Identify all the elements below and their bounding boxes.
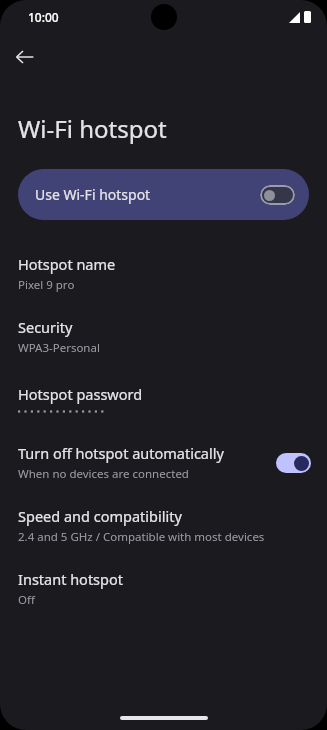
button[interactable]: Back bbox=[8, 40, 42, 74]
button[interactable]: Toggle on bbox=[276, 453, 311, 473]
staticText: Speed and compatibility bbox=[18, 506, 182, 526]
button[interactable]: Turn off hotspot automatically bbox=[0, 431, 327, 494]
button[interactable]: Toggle off bbox=[260, 185, 295, 205]
staticText: Wi-Fi hotspot bbox=[18, 112, 167, 145]
staticText: 2.4 and 5 GHz / Compatible with most dev… bbox=[18, 529, 265, 545]
staticText: WPA3-Personal bbox=[18, 340, 100, 356]
staticText: Off bbox=[18, 592, 35, 608]
button[interactable]: Security bbox=[0, 305, 327, 368]
button[interactable]: Use Wi-Fi hotspot bbox=[18, 169, 309, 220]
staticText: Hotspot password bbox=[18, 384, 143, 404]
button[interactable]: Speed and compatibility bbox=[0, 494, 327, 557]
staticText: Use Wi-Fi hotspot bbox=[35, 185, 260, 204]
button[interactable]: Instant hotspot bbox=[0, 557, 327, 620]
staticText: Turn off hotspot automatically bbox=[18, 443, 224, 463]
staticText: Pixel 9 pro bbox=[18, 277, 75, 293]
staticText: Security bbox=[18, 317, 73, 337]
button[interactable]: Hotspot name bbox=[0, 242, 327, 305]
staticText: When no devices are connected bbox=[18, 466, 189, 482]
staticText: Instant hotspot bbox=[18, 569, 123, 589]
staticText: 10:00 bbox=[28, 9, 59, 25]
button[interactable]: Hotspot password bbox=[0, 368, 327, 431]
staticText: Hotspot name bbox=[18, 254, 116, 274]
